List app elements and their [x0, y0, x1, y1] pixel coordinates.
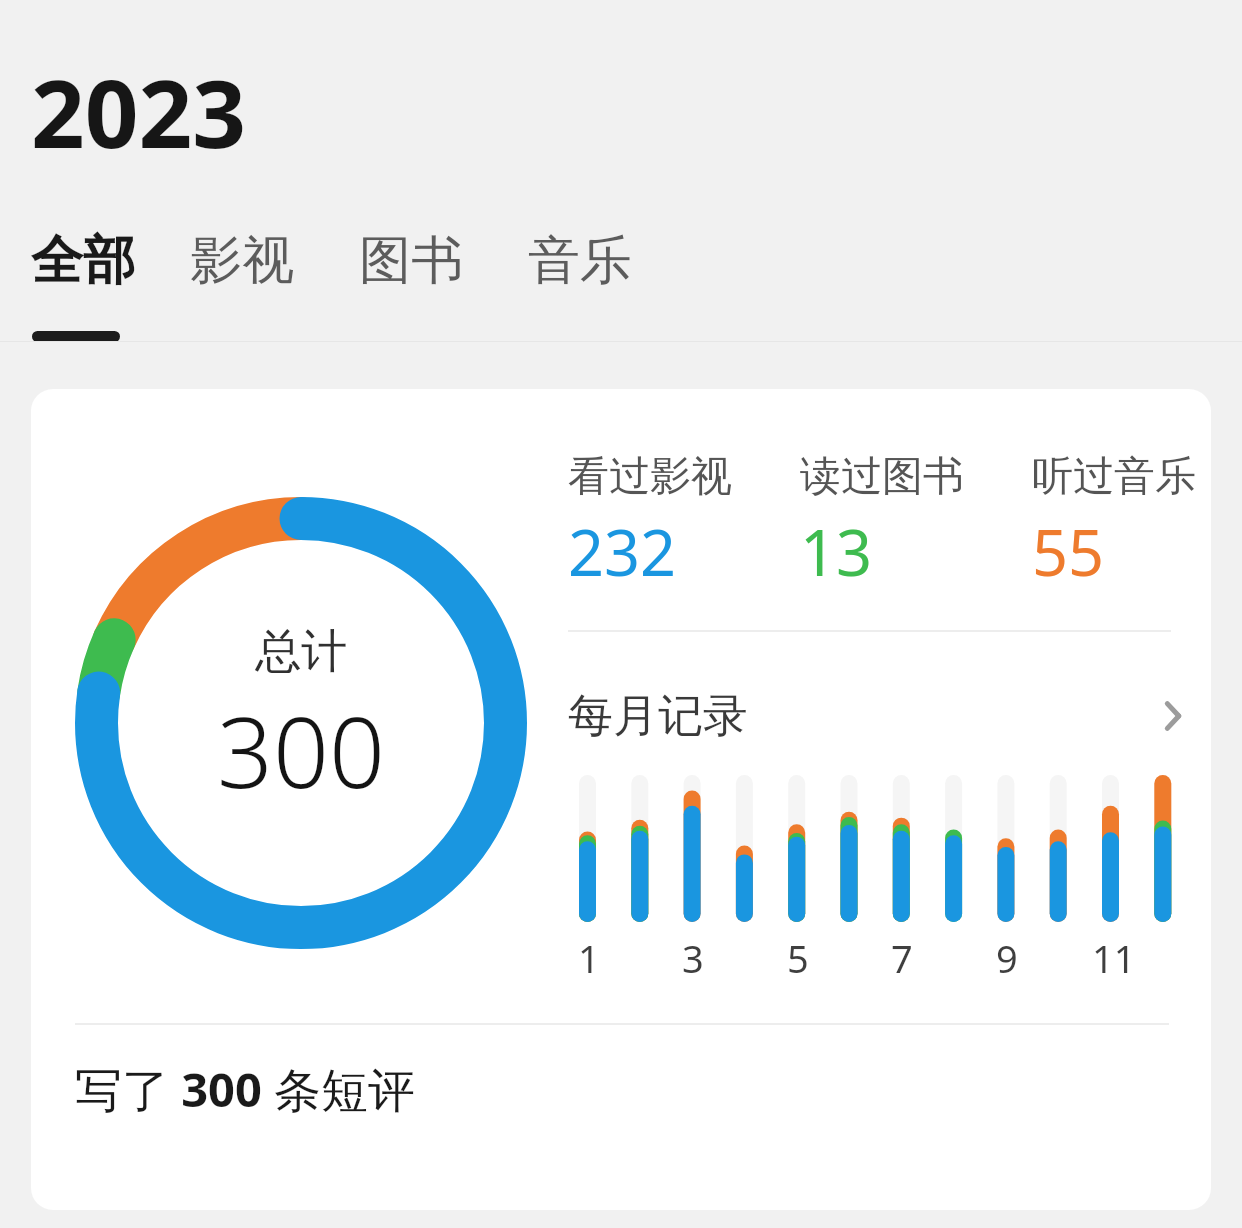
- staticText: 55: [1032, 509, 1105, 595]
- staticText: 音乐: [528, 228, 632, 294]
- button[interactable]: 写了 300 条短评: [31, 1025, 1211, 1153]
- button[interactable]: 看过影视: [568, 451, 768, 595]
- staticText: 300: [217, 683, 385, 816]
- staticText: 总计: [255, 623, 347, 681]
- staticText: 232: [568, 509, 677, 595]
- staticText: 9: [996, 932, 1018, 980]
- staticText: 13: [800, 509, 873, 595]
- staticText: 每月记录: [568, 688, 748, 745]
- staticText: 影视: [190, 228, 294, 294]
- staticText: 听过音乐: [1032, 451, 1196, 503]
- button[interactable]: 听过音乐: [1032, 451, 1211, 595]
- staticText: 11: [1092, 932, 1136, 980]
- staticText: 图书: [359, 228, 463, 294]
- staticText: 全部: [31, 228, 135, 294]
- button[interactable]: 影视: [190, 218, 315, 304]
- button[interactable]: 读过图书: [800, 451, 1000, 595]
- button[interactable]: 每月记录: [568, 677, 1194, 755]
- staticText: 2023: [31, 48, 247, 176]
- staticText: 写了 300 条短评: [75, 1057, 416, 1121]
- staticText: 读过图书: [800, 451, 964, 503]
- staticText: 5: [787, 932, 809, 980]
- staticText: 1: [578, 932, 600, 980]
- staticText: 3: [682, 932, 704, 980]
- staticText: 7: [891, 932, 913, 980]
- button[interactable]: 全部: [31, 218, 156, 304]
- button[interactable]: 音乐: [528, 218, 653, 304]
- other: 查看每月记录: [1148, 693, 1194, 739]
- button[interactable]: 图书: [359, 218, 484, 304]
- staticText: 看过影视: [568, 451, 732, 503]
